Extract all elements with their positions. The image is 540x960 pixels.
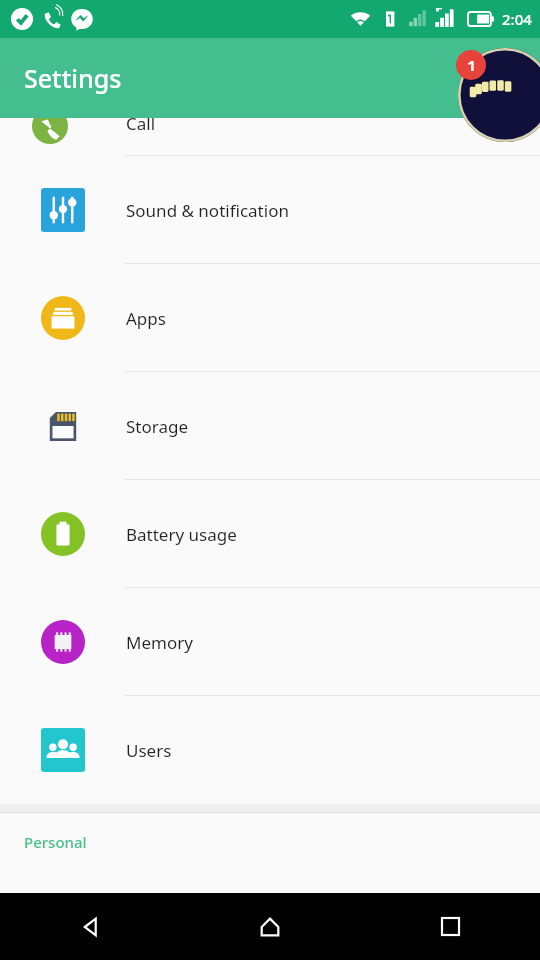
- staticText: Call: [126, 112, 156, 135]
- button[interactable]: Back: [0, 893, 180, 960]
- button[interactable]: Home: [180, 893, 360, 960]
- staticText: 1: [467, 55, 476, 75]
- staticText: Storage: [126, 415, 189, 438]
- button[interactable]: Chat bubble: [458, 48, 540, 142]
- staticText: Sound & notification: [126, 199, 289, 222]
- staticText: Battery usage: [126, 523, 237, 546]
- staticText: 2:04: [502, 9, 532, 29]
- button[interactable]: Users: [0, 696, 540, 804]
- button[interactable]: Recents: [360, 893, 540, 960]
- button[interactable]: Battery usage: [0, 480, 540, 588]
- staticText: Memory: [126, 631, 193, 654]
- button[interactable]: Sound & notification: [0, 156, 540, 264]
- staticText: Personal: [24, 832, 87, 852]
- staticText: Settings: [24, 61, 122, 95]
- staticText: Apps: [126, 307, 166, 330]
- button[interactable]: Memory: [0, 588, 540, 696]
- button[interactable]: Storage: [0, 372, 540, 480]
- staticText: Users: [126, 739, 172, 762]
- button[interactable]: Apps: [0, 264, 540, 372]
